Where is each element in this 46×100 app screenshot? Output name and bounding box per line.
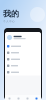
button[interactable] bbox=[5, 56, 41, 62]
button[interactable] bbox=[5, 62, 41, 69]
button[interactable] bbox=[5, 32, 41, 43]
button[interactable] bbox=[5, 43, 41, 49]
staticText: 我的 bbox=[3, 9, 19, 19]
button[interactable]: Messages bbox=[23, 95, 32, 100]
button[interactable] bbox=[5, 49, 41, 56]
button[interactable]: Home bbox=[5, 95, 14, 100]
button[interactable] bbox=[5, 69, 41, 75]
button[interactable]: Explore bbox=[14, 95, 23, 100]
button[interactable]: Profile bbox=[32, 95, 41, 100]
staticText: 个人中心 bbox=[3, 20, 15, 23]
